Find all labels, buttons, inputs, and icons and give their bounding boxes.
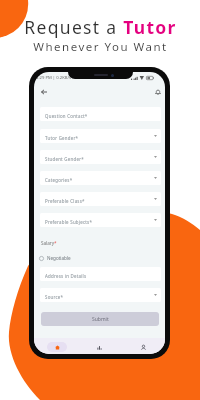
staticText: Preferable Class*	[45, 198, 85, 204]
button[interactable]: Submit	[41, 312, 159, 326]
staticText: Negotiable	[47, 255, 71, 261]
button[interactable]: Source*	[40, 288, 161, 302]
button[interactable]: Profile	[137, 341, 149, 353]
staticText: Whenever You Want	[33, 39, 168, 55]
staticText: Address in Details	[45, 273, 87, 279]
button[interactable]: Preferable Class*	[40, 192, 161, 206]
staticText: Categories*	[45, 177, 73, 183]
button[interactable]: Categories*	[40, 171, 161, 185]
button[interactable]: Back	[38, 86, 50, 98]
staticText: Source*	[45, 294, 64, 300]
button[interactable]: Home	[47, 342, 67, 352]
button[interactable]: Student Gender*	[40, 150, 161, 164]
button[interactable]: Negotiable	[39, 254, 71, 262]
staticText: Request a Tutor	[24, 15, 177, 39]
button[interactable]: Preferable Subjects*	[40, 213, 161, 227]
staticText: Salary*	[41, 240, 57, 246]
button[interactable]: Tutor Gender*	[40, 129, 161, 143]
button[interactable]: Question Contact*	[40, 107, 161, 121]
staticText: Submit	[92, 316, 109, 323]
staticText: Question Contact*	[45, 113, 88, 119]
staticText: Preferable Subjects*	[45, 219, 93, 225]
staticText: 4:29 PM | 0.2KB/s	[36, 75, 72, 81]
button[interactable]: Address in Details	[40, 267, 161, 281]
staticText: Tutor Gender*	[45, 135, 79, 141]
button[interactable]: Notifications	[152, 86, 164, 98]
staticText: Student Gender*	[45, 156, 84, 162]
button[interactable]: Statistics	[93, 341, 105, 353]
